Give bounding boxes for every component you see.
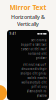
staticText: Mirror Text <box>9 3 46 12</box>
staticText: 9:41 <box>9 32 16 35</box>
staticText: deppilf si taht txet <box>20 43 46 46</box>
staticText: dnuora edis thgir <box>21 67 46 71</box>
staticText: Vertically <box>17 20 39 27</box>
staticText: esrever ot tfel morf <box>20 47 46 51</box>
staticText: txet erom sI <box>30 38 46 42</box>
staticText: yllatnoziroh ro <box>26 89 46 93</box>
staticText: yllacitrev <box>36 94 46 97</box>
staticText: wolla snottub eht <box>21 81 46 84</box>
staticText: noitcerid eht <box>27 52 46 55</box>
staticText: Horizontally & <box>11 13 45 20</box>
staticText: gnidaer <box>35 56 46 60</box>
staticText: eht nrut nac uoY <box>22 63 46 66</box>
staticText: woleb nwohs <box>27 76 46 80</box>
staticText: pilf ot uoy <box>31 85 46 89</box>
staticText: snoitpo eht gnisu <box>20 72 46 75</box>
